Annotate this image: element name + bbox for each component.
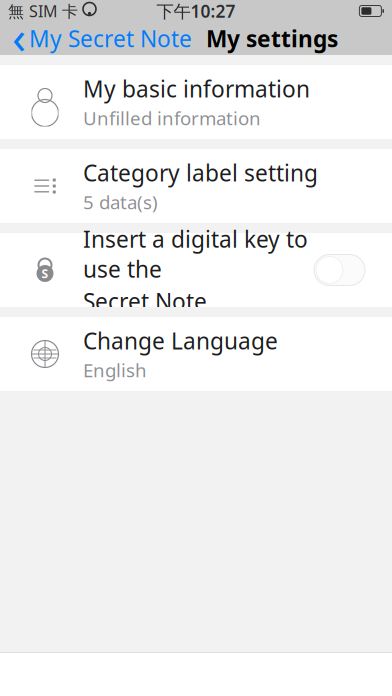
staticText: English [83,358,147,382]
button[interactable]: S [0,233,392,307]
staticText: 無 SIM 卡 [8,0,78,22]
staticText: Change Language [83,326,278,356]
staticText: S [41,265,48,281]
staticText: Unfilled information [83,106,261,130]
button[interactable]: ‹ [0,22,198,55]
staticText: Secret Note [83,286,207,316]
staticText: ‹ [12,6,26,67]
button[interactable]: Change Language [0,317,392,391]
staticText: 5 data(s) [83,190,158,214]
staticText: My settings [206,23,338,53]
staticText: My Secret Note [29,23,192,53]
staticText: My basic information [83,74,310,104]
staticText: Category label setting [83,158,318,188]
staticText: Insert a digital key to use the [83,224,308,284]
staticText: 下午10:27 [156,0,235,22]
button[interactable]: My basic information [0,65,392,139]
button[interactable]: Category label setting [0,149,392,223]
